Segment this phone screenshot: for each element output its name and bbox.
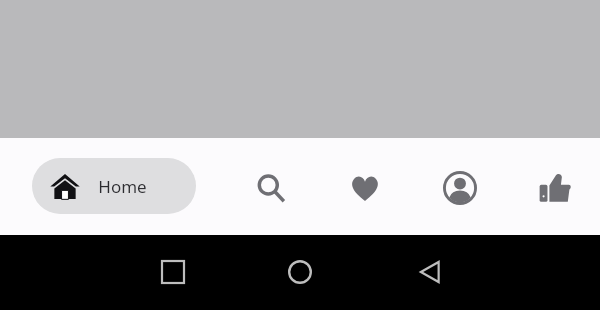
staticText: Home	[98, 175, 147, 198]
button[interactable]: Home	[32, 158, 196, 214]
button[interactable]: Profile	[436, 164, 484, 212]
button[interactable]: Favorites	[341, 164, 389, 212]
button[interactable]: Like	[531, 164, 579, 212]
button[interactable]: Search	[247, 164, 295, 212]
button[interactable]: Recent apps	[149, 248, 197, 296]
button[interactable]: Home	[276, 248, 324, 296]
button[interactable]: Back	[406, 248, 454, 296]
